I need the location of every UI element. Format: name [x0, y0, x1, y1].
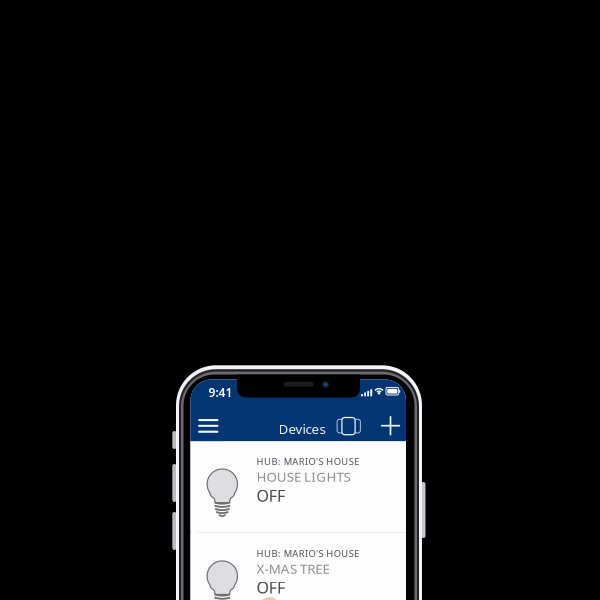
staticText: HUB: MARIO'S HOUSE [256, 455, 359, 468]
staticText: OFF [256, 485, 285, 506]
button[interactable]: Rooms [333, 411, 363, 440]
button[interactable]: Add device [376, 411, 405, 440]
staticText: 9:41 [208, 384, 232, 400]
button[interactable]: HUB: MARIO'S HOUSE [190, 441, 406, 532]
staticText: OFF [256, 577, 285, 598]
button[interactable]: Menu [192, 410, 225, 441]
staticText: X-MAS TREE [256, 560, 329, 577]
staticText: Devices [278, 420, 325, 438]
staticText: HOUSE LIGHTS [256, 468, 351, 485]
staticText: HUB: MARIO'S HOUSE [256, 547, 359, 560]
button[interactable]: HUB: MARIO'S HOUSE [190, 533, 406, 600]
